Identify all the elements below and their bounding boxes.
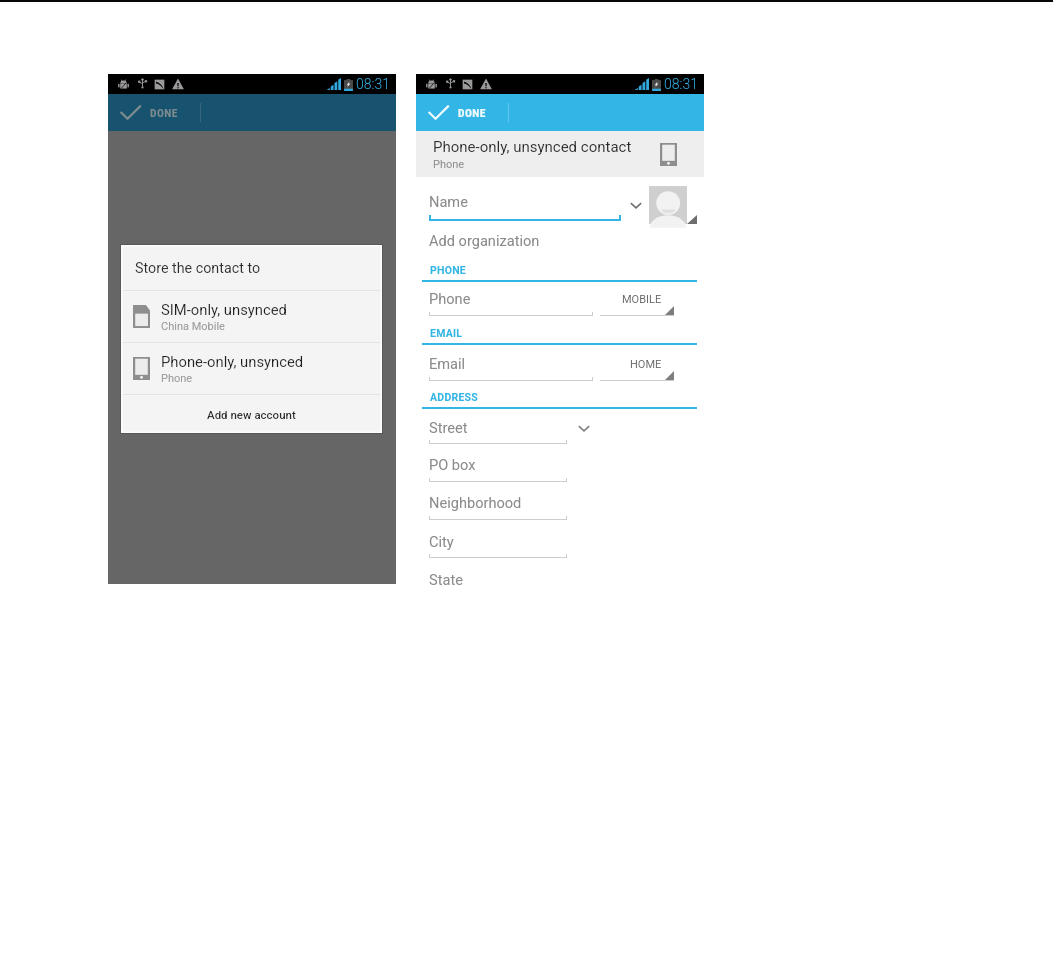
button[interactable]: Add organization bbox=[429, 227, 621, 255]
staticText: DONE bbox=[458, 106, 486, 119]
staticText: Phone bbox=[429, 290, 471, 307]
button[interactable]: DONE bbox=[108, 94, 200, 131]
staticText: Email bbox=[429, 355, 466, 372]
button[interactable]: Phone bbox=[429, 285, 593, 313]
staticText: HOME bbox=[630, 358, 662, 371]
staticText: PHONE bbox=[430, 264, 466, 276]
staticText: Phone-only, unsynced contact bbox=[433, 138, 632, 156]
staticText: Phone bbox=[433, 158, 465, 171]
button[interactable]: Email bbox=[429, 350, 593, 378]
staticText: SIM-only, unsynced bbox=[161, 301, 287, 318]
button[interactable]: SIM-only, unsynced bbox=[121, 291, 382, 342]
button[interactable]: DONE bbox=[416, 94, 508, 131]
staticText: City bbox=[429, 533, 454, 550]
button[interactable]: Phone-only, unsynced bbox=[121, 343, 382, 394]
staticText: Name bbox=[429, 193, 468, 210]
staticText: China Mobile bbox=[161, 320, 225, 333]
staticText: Phone-only, unsynced bbox=[161, 353, 304, 370]
button[interactable]: PO box bbox=[429, 451, 567, 479]
button[interactable]: Expand address bbox=[577, 421, 591, 435]
staticText: EMAIL bbox=[430, 327, 463, 339]
staticText: DONE bbox=[150, 106, 178, 119]
staticText: 08:31 bbox=[356, 76, 391, 92]
button[interactable]: City bbox=[429, 528, 567, 556]
staticText: Phone bbox=[161, 372, 193, 385]
staticText: State bbox=[429, 571, 463, 588]
staticText: Neighborhood bbox=[429, 494, 522, 511]
button[interactable]: Add contact photo bbox=[649, 186, 687, 224]
staticText: Store the contact to bbox=[135, 260, 261, 277]
button[interactable]: MOBILE bbox=[600, 289, 674, 316]
staticText: MOBILE bbox=[622, 293, 662, 306]
button[interactable]: Expand name bbox=[629, 198, 643, 212]
button[interactable]: Add new account bbox=[121, 395, 382, 433]
button[interactable]: Phone-only, unsynced contact bbox=[416, 131, 704, 177]
staticText: ADDRESS bbox=[430, 391, 479, 403]
button[interactable]: Neighborhood bbox=[429, 489, 567, 517]
button[interactable]: Name bbox=[429, 188, 621, 216]
staticText: 08:31 bbox=[664, 76, 699, 92]
staticText: Add organization bbox=[429, 232, 540, 249]
staticText: Street bbox=[429, 419, 468, 436]
staticText: PO box bbox=[429, 456, 476, 473]
button[interactable]: Street bbox=[429, 414, 567, 442]
staticText: Add new account bbox=[207, 408, 296, 421]
button[interactable]: HOME bbox=[600, 354, 674, 381]
button[interactable]: State bbox=[429, 566, 567, 594]
